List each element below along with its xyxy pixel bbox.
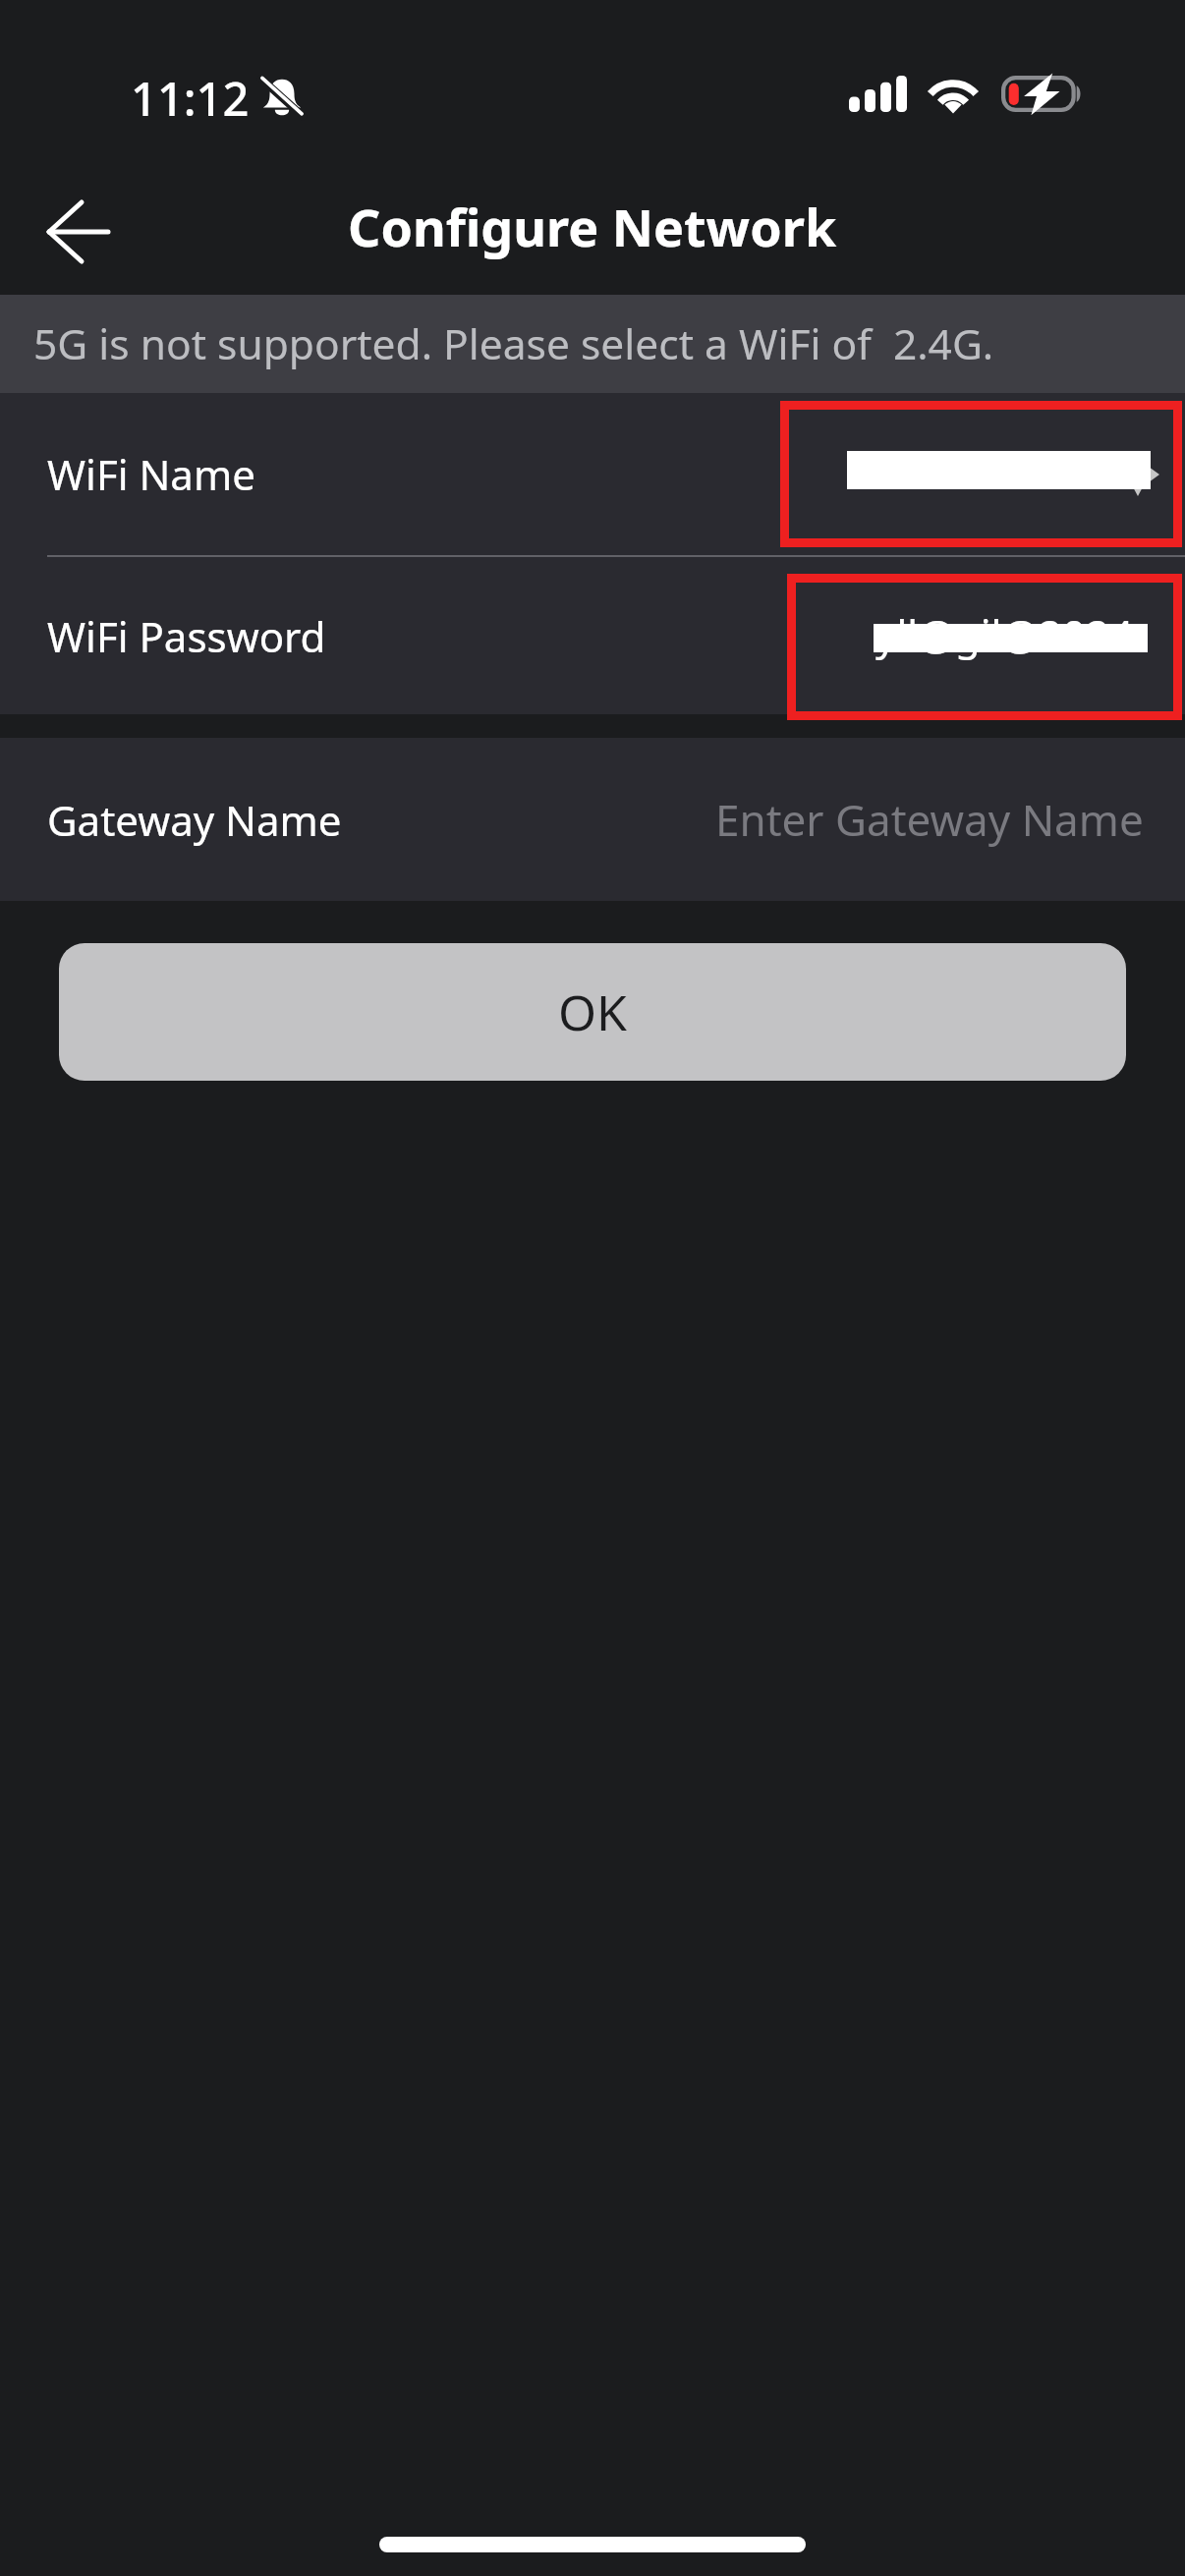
button[interactable]: Gateway Name — [0, 738, 1185, 901]
staticText: OK — [558, 979, 627, 1045]
staticText: WiFi Name — [47, 446, 255, 502]
button[interactable]: WiFi Password — [0, 557, 1185, 714]
button[interactable]: WiFi Name — [0, 393, 1185, 555]
button[interactable]: OK — [59, 943, 1126, 1081]
staticText: Configure Network — [348, 192, 837, 261]
staticText: 5G is not supported. Please select a WiF… — [33, 315, 994, 372]
staticText: Enter Gateway Name — [715, 790, 1144, 849]
staticText: WiFi Password — [47, 608, 326, 664]
button[interactable]: Back — [0, 157, 157, 295]
staticText: yll@gil@2024 — [875, 606, 1134, 662]
staticText: Gateway Name — [47, 792, 342, 848]
staticText: 11:12 — [131, 67, 250, 130]
